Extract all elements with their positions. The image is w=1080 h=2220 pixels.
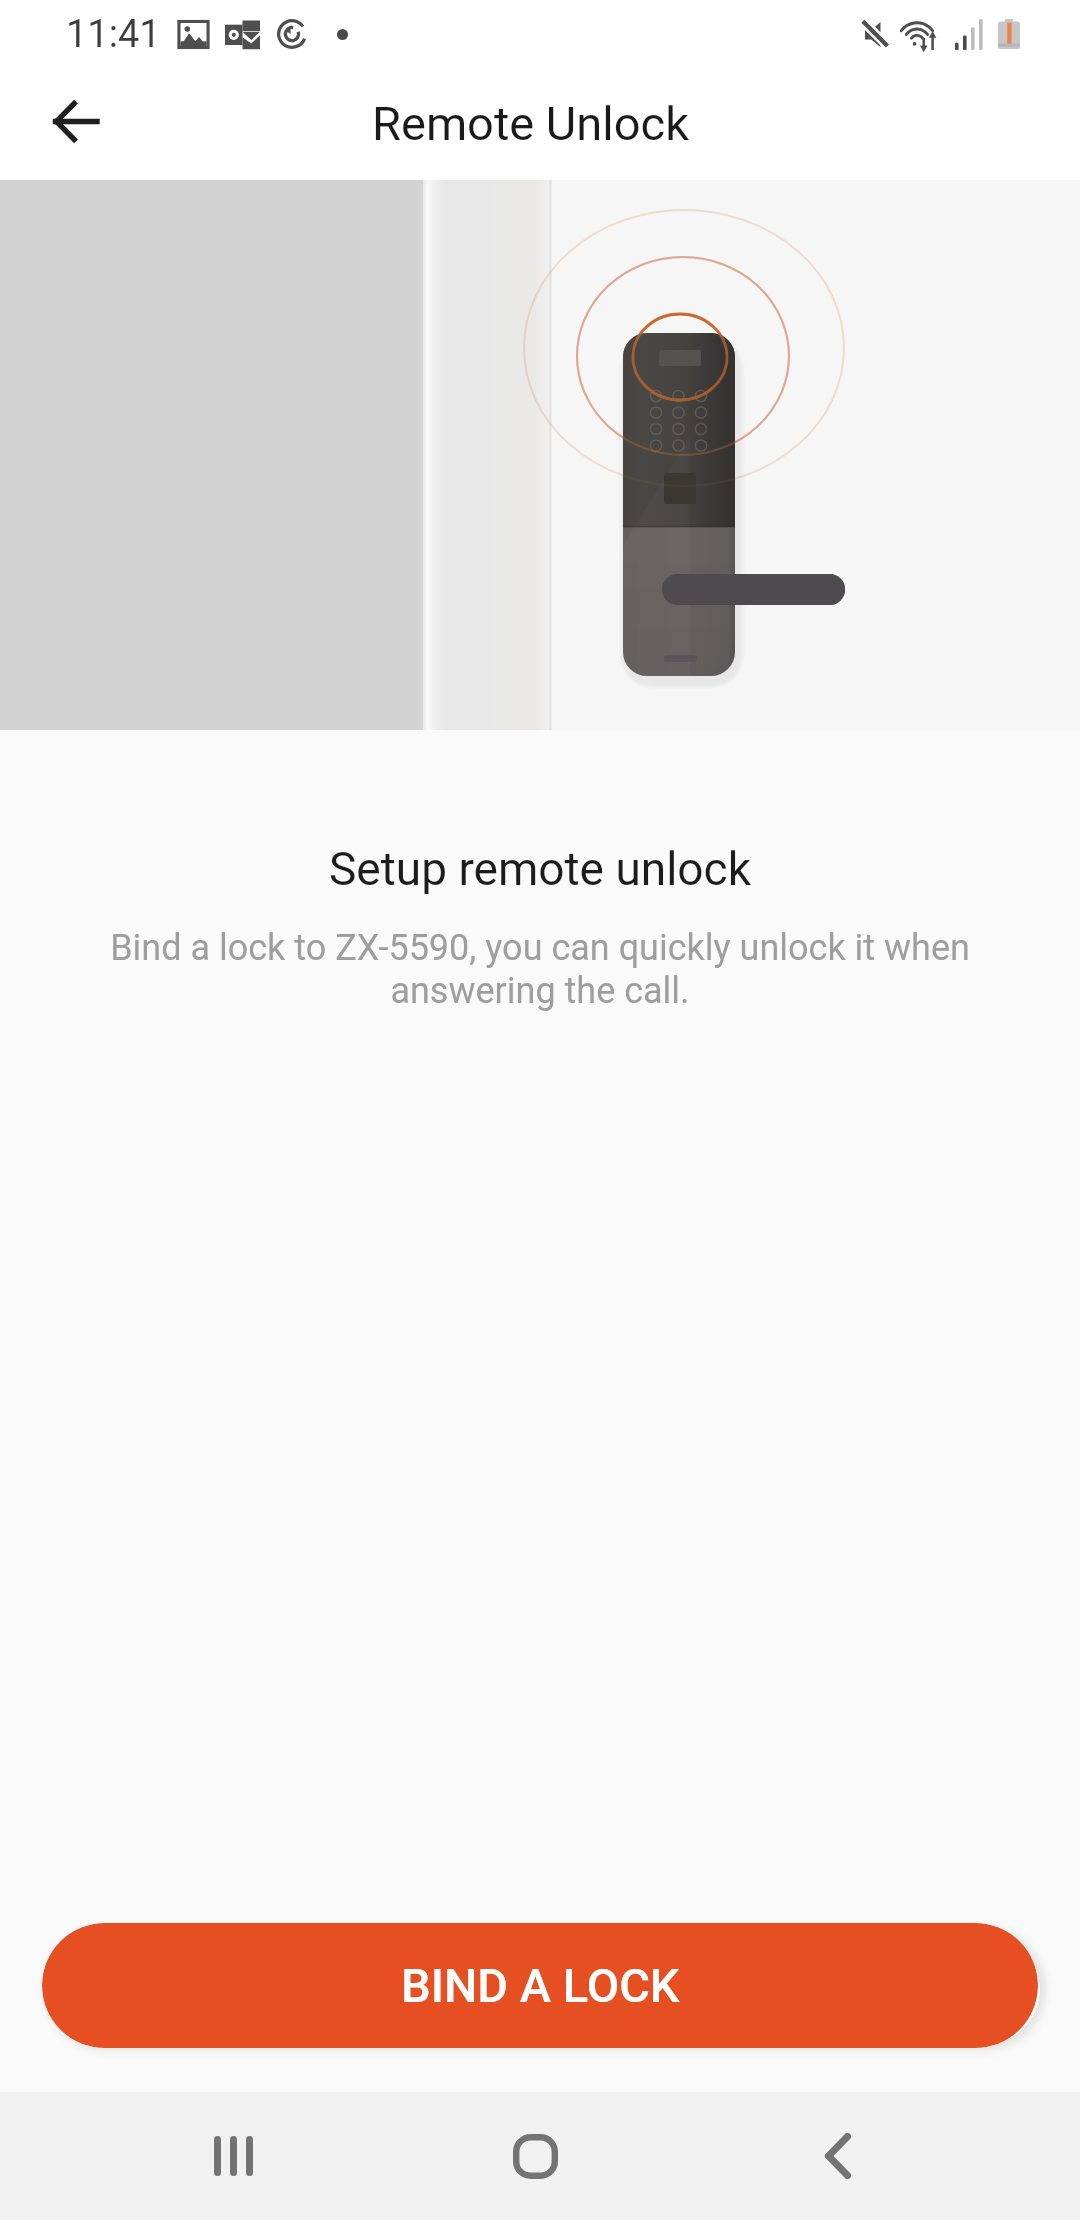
button[interactable]: BIND A LOCK [42,1923,1038,2048]
staticText: Setup remote unlock [0,842,1080,896]
staticText: Bind a lock to ZX-5590, you can quickly … [58,927,1022,1012]
button[interactable]: Home [465,2092,605,2220]
staticText: 11:41 [66,12,161,57]
staticText: Remote Unlock [372,96,689,151]
button[interactable]: Back [768,2092,908,2220]
button[interactable]: Recent apps [163,2092,303,2220]
staticText: BIND A LOCK [401,1958,680,2013]
button[interactable]: Back [28,74,122,168]
